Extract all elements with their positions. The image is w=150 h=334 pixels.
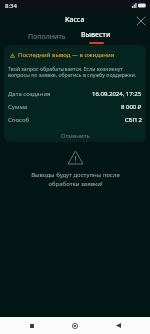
staticText: СБП 2 (125, 116, 142, 124)
staticText: 16.09.2024, 17:25 (92, 90, 142, 98)
button[interactable]: Пополнить (20, 29, 74, 44)
staticText: 8:34 (5, 2, 17, 10)
staticText: Касса (65, 15, 85, 25)
staticText: Вывести (81, 30, 111, 40)
staticText: Пополнить (28, 32, 66, 42)
staticText: Дата создания (8, 90, 51, 98)
button[interactable]: Вывести (74, 29, 118, 44)
button[interactable]: Recents (21, 317, 43, 334)
staticText: Отменить (61, 132, 90, 140)
button[interactable]: Отменить (4, 130, 146, 142)
staticText: Способ (8, 116, 30, 124)
staticText: Выводы будут доступны после обработки за… (31, 171, 120, 188)
staticText: 8 000 ₽ (121, 103, 142, 111)
button[interactable]: Back (107, 317, 129, 334)
button[interactable]: Close (134, 14, 148, 28)
staticText: Твой запрос обрабатывается. Если возникн… (8, 65, 142, 78)
staticText: Последний вывод — в ожидании (18, 51, 115, 59)
staticText: Сумма (8, 103, 28, 111)
button[interactable]: Home (64, 317, 86, 334)
